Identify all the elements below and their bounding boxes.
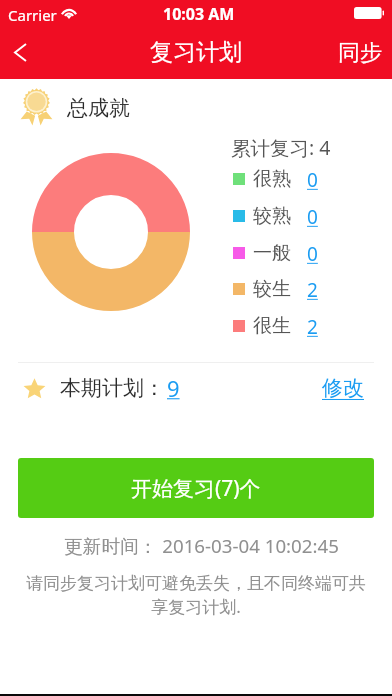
button[interactable]: 一般 xyxy=(233,241,318,265)
staticText: 0 xyxy=(307,167,318,191)
staticText: 很熟 xyxy=(253,167,291,191)
staticText: 开始复习(7)个 xyxy=(131,474,261,503)
staticText: 2 xyxy=(307,314,318,338)
button[interactable]: 开始复习(7)个 xyxy=(18,458,374,518)
staticText: 10:03 AM xyxy=(163,3,235,25)
staticText: 较熟 xyxy=(253,204,291,228)
staticText: 修改 xyxy=(322,375,364,401)
staticText: 0 xyxy=(307,241,318,265)
staticText: 2 xyxy=(307,277,318,301)
staticText: 9 xyxy=(167,373,180,403)
button[interactable]: 修改 xyxy=(322,375,364,401)
staticText: 请同步复习计划可避免丢失，且不同终端可共 享复习计划. xyxy=(20,573,372,618)
button[interactable]: 很熟 xyxy=(233,167,318,191)
button[interactable]: 较生 xyxy=(233,277,318,301)
staticText: 较生 xyxy=(253,277,291,301)
staticText: 累计复习: 4 xyxy=(231,134,331,161)
staticText: 很生 xyxy=(253,314,291,338)
button[interactable]: 较熟 xyxy=(233,204,318,228)
staticText: Carrier xyxy=(8,5,57,25)
staticText: 总成就 xyxy=(67,95,130,121)
button[interactable]: Back xyxy=(0,30,48,79)
staticText: 更新时间： 2016-03-04 10:02:45 xyxy=(64,533,339,559)
button[interactable]: 同步 xyxy=(330,30,392,79)
button[interactable]: 很生 xyxy=(233,314,318,338)
staticText: 0 xyxy=(307,204,318,228)
staticText: 同步 xyxy=(338,39,382,67)
staticText: 一般 xyxy=(253,241,291,265)
staticText: 复习计划 xyxy=(150,38,242,67)
staticText: 本期计划： xyxy=(60,375,165,401)
